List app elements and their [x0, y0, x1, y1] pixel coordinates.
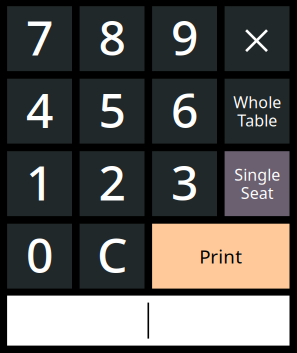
staticText: Print	[199, 244, 242, 269]
staticText: C	[97, 222, 127, 286]
staticText: 4	[26, 77, 53, 141]
button[interactable]: 3	[152, 151, 217, 216]
staticText: 9	[171, 5, 198, 69]
staticText: 2	[98, 150, 125, 214]
button[interactable]: 7	[7, 6, 72, 71]
staticText: Single	[234, 164, 280, 185]
button[interactable]: 4	[7, 79, 72, 144]
button[interactable]: Delete	[225, 6, 289, 71]
staticText: 6	[171, 77, 198, 141]
staticText: Table	[237, 110, 277, 131]
button[interactable]: Print	[152, 224, 289, 289]
button[interactable]: 9	[152, 6, 217, 71]
staticText: 1	[26, 150, 53, 214]
button[interactable]: 6	[152, 79, 217, 144]
staticText: 8	[98, 5, 125, 69]
staticText: 7	[26, 5, 53, 69]
button[interactable]: 0	[7, 224, 72, 289]
button[interactable]: Single	[225, 151, 289, 216]
button[interactable]: 2	[80, 151, 144, 216]
button[interactable]: 8	[80, 6, 144, 71]
staticText: 0	[26, 222, 53, 286]
button[interactable]: 1	[7, 151, 72, 216]
staticText: 5	[98, 77, 125, 141]
staticText: 3	[171, 150, 198, 214]
button[interactable]: Whole	[225, 79, 289, 144]
staticText: Whole	[233, 91, 281, 113]
button[interactable]: C	[80, 224, 144, 289]
button[interactable]: 5	[80, 79, 144, 144]
staticText: Seat	[240, 182, 273, 203]
button[interactable]: Entry field	[7, 296, 289, 346]
